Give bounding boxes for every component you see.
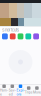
button[interactable]: Explore <box>16 84 25 96</box>
button[interactable]: Trips <box>25 84 33 96</box>
button[interactable]: Shortcut <box>10 33 16 39</box>
staticText: More <box>33 90 41 94</box>
staticText: Saved <box>9 88 16 96</box>
button[interactable]: Shortcut <box>33 33 39 39</box>
button[interactable]: Shortcut <box>25 33 31 39</box>
staticText: Explore <box>16 88 24 96</box>
button[interactable]: Home <box>0 84 8 96</box>
staticText: Home <box>0 88 8 96</box>
button[interactable]: Shortcut <box>18 33 23 39</box>
button[interactable]: More <box>33 84 41 96</box>
staticText: Trips <box>25 90 33 94</box>
button[interactable]: Shortcut <box>2 33 8 39</box>
button[interactable]: Saved <box>8 84 16 96</box>
staticText: Shortcuts <box>2 28 19 32</box>
